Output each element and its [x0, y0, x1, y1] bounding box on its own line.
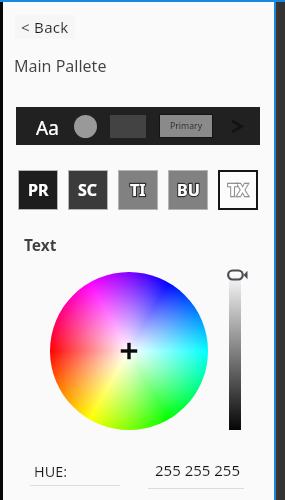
staticText: PR	[28, 179, 49, 201]
button[interactable]	[229, 272, 241, 430]
button[interactable]: TX	[218, 170, 258, 210]
button[interactable]	[50, 272, 208, 430]
staticText: Aa	[36, 115, 59, 137]
staticText: Text	[24, 234, 57, 255]
staticText: BU	[177, 179, 200, 201]
button[interactable]: BU	[168, 170, 208, 210]
staticText: Primary	[170, 120, 203, 132]
button[interactable]: < Back	[15, 15, 75, 39]
button[interactable]: Brightness handle	[227, 269, 248, 281]
staticText: BU	[177, 179, 200, 201]
staticText: < Back	[21, 17, 69, 37]
button[interactable]: PR	[18, 170, 58, 210]
staticText: Main Pallete	[14, 55, 107, 77]
button[interactable]: Next	[225, 115, 247, 137]
button[interactable]: Aa	[36, 115, 59, 137]
staticText: HUE:	[34, 462, 68, 482]
staticText: PR	[28, 179, 49, 201]
staticText: TX	[228, 179, 248, 201]
staticText: SC	[78, 179, 98, 201]
button[interactable]: Colour swatch	[74, 115, 97, 138]
staticText: SC	[78, 179, 98, 201]
staticText: 255 255 255	[155, 460, 241, 480]
button[interactable]: Primary	[159, 114, 213, 138]
button[interactable]: SC	[68, 170, 108, 210]
button[interactable]: TI	[118, 170, 158, 210]
staticText: TI	[130, 179, 146, 201]
staticText: TI	[130, 179, 146, 201]
staticText: TX	[228, 179, 248, 201]
